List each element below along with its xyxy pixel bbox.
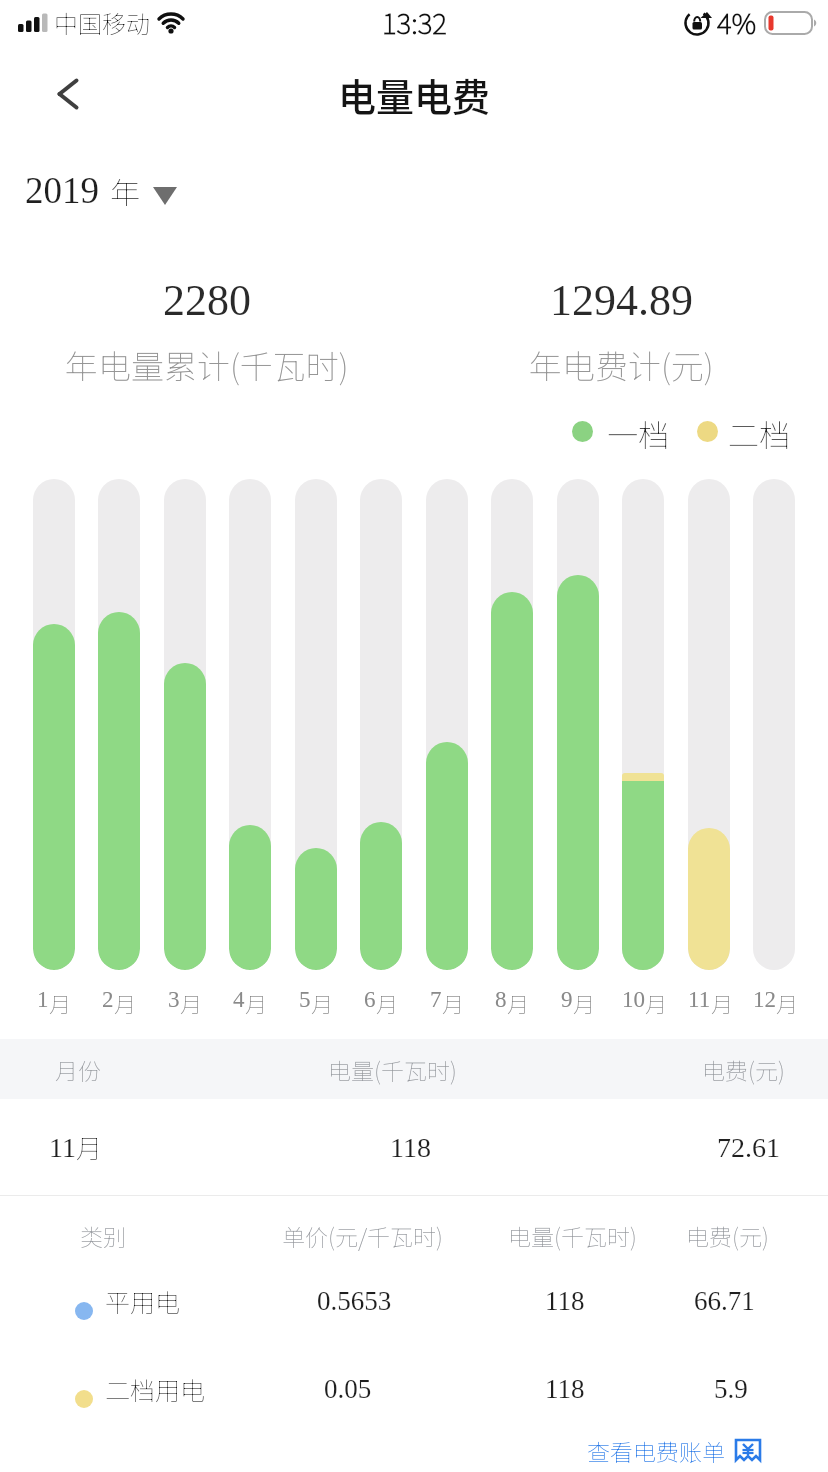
staticText: 11 xyxy=(688,987,711,1012)
staticText: 4% xyxy=(717,2,757,43)
staticText: 1 xyxy=(37,987,49,1012)
staticText: 月 xyxy=(645,987,664,1019)
staticText: 7 xyxy=(430,987,442,1012)
staticText: 年电费计(元) xyxy=(529,341,714,389)
staticText: 年 xyxy=(110,169,140,212)
staticText: 0.5653 xyxy=(317,1286,392,1316)
staticText: 二档 xyxy=(728,411,790,451)
staticText: 月 xyxy=(711,987,730,1019)
staticText: 中国移动 xyxy=(54,5,150,40)
staticText: 9 xyxy=(561,987,573,1012)
staticText: 118 xyxy=(390,1132,431,1163)
staticText: 4 xyxy=(233,987,245,1012)
staticText: 2019 xyxy=(25,170,99,211)
staticText: 12 xyxy=(753,987,776,1012)
staticText: 8 xyxy=(495,987,507,1012)
staticText: 月 xyxy=(180,987,203,1019)
button[interactable]: 2019 xyxy=(25,144,178,236)
staticText: 查看电费账单 xyxy=(587,1434,725,1467)
button[interactable]: 平用电 xyxy=(0,1274,828,1328)
staticText: 118 xyxy=(545,1374,585,1404)
staticText: 月 xyxy=(311,987,334,1019)
staticText: 月 xyxy=(442,987,465,1019)
button[interactable] xyxy=(40,66,96,122)
staticText: 电费(元) xyxy=(702,1053,785,1086)
staticText: 10 xyxy=(622,987,645,1012)
staticText: 电量(千瓦时) xyxy=(508,1219,637,1252)
button[interactable]: 二档用电 xyxy=(0,1362,828,1416)
staticText: 月 xyxy=(507,987,530,1019)
staticText: 3 xyxy=(168,987,180,1012)
staticText: 月 xyxy=(114,987,137,1019)
staticText: 电量电费 xyxy=(338,67,491,122)
button[interactable]: 11 xyxy=(0,1099,828,1195)
staticText: 二档用电 xyxy=(105,1371,206,1407)
staticText: 5 xyxy=(299,987,311,1012)
staticText: 一档 xyxy=(607,411,669,451)
staticText: 年电量累计(千瓦时) xyxy=(65,341,349,389)
staticText: 72.61 xyxy=(717,1132,780,1163)
staticText: 月 xyxy=(776,987,795,1019)
staticText: 1294.89 xyxy=(550,276,693,325)
staticText: 月 xyxy=(376,987,399,1019)
staticText: 13:32 xyxy=(382,2,447,43)
staticText: 5.9 xyxy=(714,1374,748,1404)
staticText: 11 xyxy=(49,1132,76,1163)
staticText: 66.71 xyxy=(694,1286,755,1316)
staticText: 电费(元) xyxy=(686,1219,769,1252)
staticText: 月 xyxy=(76,1128,103,1166)
staticText: 2280 xyxy=(163,276,251,325)
staticText: 月 xyxy=(573,987,596,1019)
button[interactable]: 查看电费账单 xyxy=(0,1428,762,1472)
staticText: 类别 xyxy=(80,1219,126,1252)
staticText: 单价(元/千瓦时) xyxy=(282,1219,443,1252)
staticText: 月份 xyxy=(55,1053,101,1086)
staticText: 0.05 xyxy=(324,1374,372,1404)
staticText: 月 xyxy=(245,987,268,1019)
staticText: 118 xyxy=(545,1286,585,1316)
staticText: 电量(千瓦时) xyxy=(328,1053,457,1086)
staticText: 6 xyxy=(364,987,376,1012)
staticText: 平用电 xyxy=(105,1283,181,1319)
staticText: 2 xyxy=(102,987,114,1012)
staticText: 月 xyxy=(49,987,72,1019)
